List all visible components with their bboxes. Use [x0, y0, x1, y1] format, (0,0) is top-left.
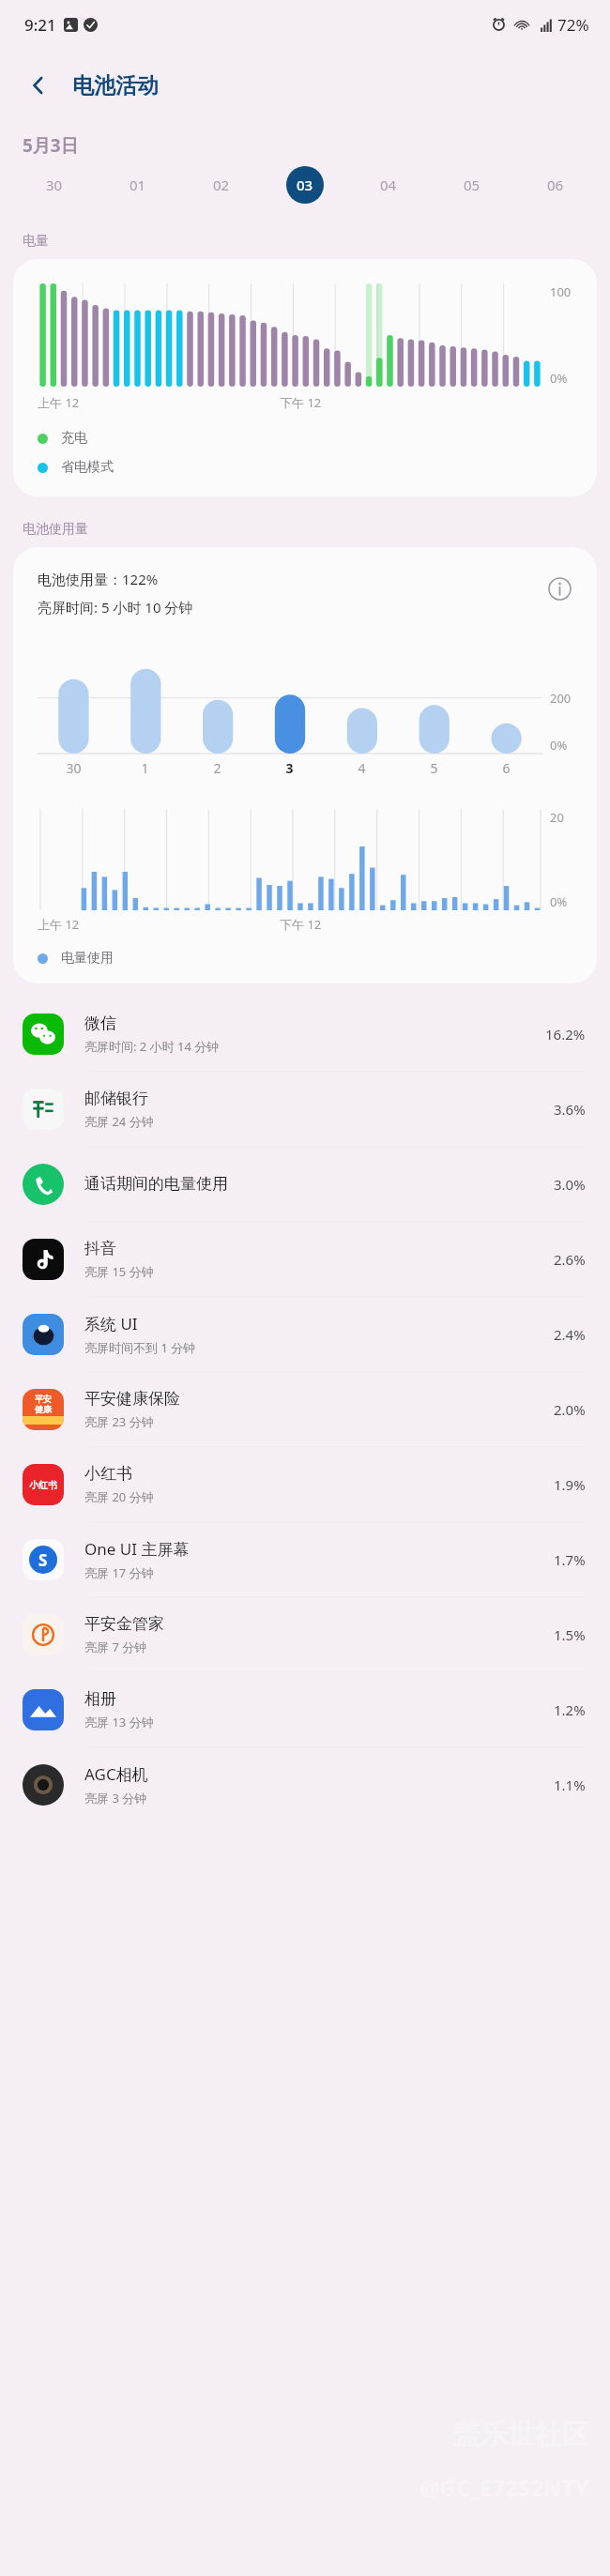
staticText: AGC相机: [84, 1763, 148, 1785]
button[interactable]: 相册: [0, 1672, 610, 1746]
button[interactable]: 系统 UI: [0, 1297, 610, 1371]
staticText: 电池使用量: [23, 521, 88, 538]
staticText: 72%: [557, 14, 589, 36]
button[interactable]: 03: [263, 158, 346, 212]
staticText: 健康: [35, 1404, 52, 1414]
staticText: 04: [380, 175, 397, 194]
button[interactable]: 平安金管家: [0, 1597, 610, 1671]
staticText: 下午 12: [280, 394, 322, 411]
staticText: 亮屏 3 分钟: [84, 1790, 147, 1806]
staticText: 微信: [84, 1014, 116, 1033]
staticText: 亮屏时间: 2 小时 14 分钟: [84, 1038, 220, 1055]
staticText: 上午 12: [38, 916, 80, 933]
button[interactable]: 邮储银行: [0, 1072, 610, 1146]
staticText: 01: [130, 175, 146, 194]
staticText: 2.0%: [554, 1400, 586, 1419]
staticText: 1: [141, 759, 149, 777]
staticText: 2: [213, 759, 221, 777]
staticText: 电池活动: [72, 72, 159, 99]
staticText: 亮屏时间: 5 小时 10 分钟: [38, 598, 193, 617]
button[interactable]: 30: [13, 158, 96, 212]
staticText: 3.0%: [554, 1175, 586, 1194]
button[interactable]: 04: [346, 158, 430, 212]
button[interactable]: Information: [541, 570, 578, 607]
staticText: 4: [358, 759, 366, 777]
staticText: 3: [285, 759, 294, 777]
button[interactable]: 微信: [0, 997, 610, 1071]
staticText: 1.5%: [554, 1625, 586, 1644]
staticText: 20: [550, 809, 564, 826]
staticText: 1.7%: [554, 1550, 586, 1569]
button[interactable]: S: [0, 1522, 610, 1596]
button[interactable]: 平安: [0, 1372, 610, 1446]
staticText: 抖音: [84, 1239, 116, 1258]
staticText: 上午 12: [38, 394, 80, 411]
staticText: 200: [550, 690, 572, 707]
staticText: 下午 12: [280, 916, 322, 933]
staticText: 平安健康保险: [84, 1389, 180, 1409]
staticText: 2.6%: [554, 1250, 586, 1269]
staticText: 2.4%: [554, 1325, 586, 1344]
staticText: 平安金管家: [84, 1614, 164, 1634]
staticText: 充电: [61, 430, 87, 447]
button[interactable]: 小红书: [0, 1447, 610, 1521]
staticText: 亮屏 20 分钟: [84, 1488, 154, 1505]
staticText: 亮屏 17 分钟: [84, 1564, 154, 1581]
staticText: 06: [547, 175, 564, 194]
staticText: 5: [430, 759, 438, 777]
button[interactable]: AGC相机: [0, 1747, 610, 1821]
staticText: 05: [464, 175, 480, 194]
staticText: 亮屏 23 分钟: [84, 1413, 154, 1430]
staticText: 电量使用: [61, 950, 114, 967]
staticText: 1.9%: [554, 1475, 586, 1494]
staticText: 9:21: [24, 14, 56, 36]
staticText: 系统 UI: [84, 1313, 138, 1334]
button[interactable]: 02: [179, 158, 263, 212]
staticText: 0%: [550, 737, 568, 754]
staticText: 5月3日: [23, 133, 79, 158]
staticText: 100: [550, 283, 572, 300]
staticText: 30: [46, 175, 63, 194]
staticText: 02: [213, 175, 230, 194]
staticText: One UI 主屏幕: [84, 1538, 190, 1560]
staticText: 3.6%: [554, 1100, 586, 1119]
staticText: 邮储银行: [84, 1089, 148, 1108]
staticText: 电池使用量：122%: [38, 570, 159, 588]
staticText: 6: [502, 759, 511, 777]
staticText: 通话期间的电量使用: [84, 1174, 228, 1194]
button[interactable]: 抖音: [0, 1222, 610, 1296]
staticText: 1.1%: [554, 1776, 586, 1794]
button[interactable]: 06: [513, 158, 597, 212]
button[interactable]: 01: [96, 158, 179, 212]
button[interactable]: Back: [17, 64, 60, 107]
staticText: 0%: [550, 370, 568, 387]
staticText: 相册: [84, 1689, 116, 1709]
staticText: 03: [297, 175, 313, 194]
staticText: S: [38, 1549, 48, 1571]
staticText: 亮屏 13 分钟: [84, 1714, 154, 1730]
button[interactable]: 05: [430, 158, 513, 212]
staticText: 亮屏时间不到 1 分钟: [84, 1339, 196, 1356]
staticText: 亮屏 7 分钟: [84, 1639, 147, 1655]
staticText: 省电模式: [61, 459, 114, 476]
button[interactable]: 通话期间的电量使用: [0, 1147, 610, 1221]
staticText: 小红书: [84, 1464, 132, 1484]
staticText: 亮屏 15 分钟: [84, 1263, 154, 1280]
staticText: 电量: [23, 233, 49, 250]
staticText: 16.2%: [545, 1025, 586, 1044]
staticText: 0%: [550, 893, 568, 910]
staticText: 平安: [35, 1394, 52, 1404]
staticText: 亮屏 24 分钟: [84, 1113, 154, 1130]
staticText: 30: [66, 759, 82, 777]
staticText: 小红书: [29, 1479, 57, 1491]
staticText: 1.2%: [554, 1700, 586, 1719]
